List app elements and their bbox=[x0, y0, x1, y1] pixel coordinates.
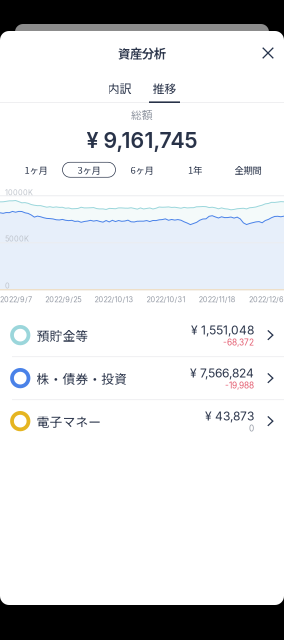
staticText: 電子マネー bbox=[36, 412, 101, 430]
staticText: 2022/9/25 bbox=[45, 295, 81, 304]
staticText: 10000K bbox=[5, 188, 33, 197]
button[interactable]: 預貯金等 bbox=[0, 314, 284, 357]
staticText: 3ヶ月 bbox=[77, 163, 100, 176]
staticText: 5000K bbox=[5, 234, 29, 243]
button[interactable]: 推移 bbox=[149, 75, 180, 103]
staticText: ¥ 1,551,048 bbox=[191, 323, 254, 337]
staticText: 1ヶ月 bbox=[24, 163, 47, 176]
staticText: 6ヶ月 bbox=[130, 163, 153, 176]
button[interactable]: 株・債券・投資 bbox=[0, 357, 284, 400]
staticText: 総額 bbox=[131, 107, 153, 122]
staticText: 1年 bbox=[188, 163, 202, 176]
staticText: 内訳 bbox=[107, 79, 131, 97]
staticText: 2022/11/18 bbox=[199, 295, 236, 304]
staticText: 2022/9/7 bbox=[0, 295, 32, 304]
staticText: 資産分析 bbox=[118, 44, 166, 62]
staticText: 株・債券・投資 bbox=[36, 369, 127, 387]
staticText: 2022/10/13 bbox=[94, 295, 133, 304]
staticText: -19,988 bbox=[225, 380, 254, 390]
button[interactable]: 6ヶ月 bbox=[115, 162, 168, 177]
button[interactable]: Close bbox=[252, 39, 284, 67]
staticText: 預貯金等 bbox=[36, 326, 88, 344]
staticText: 0 bbox=[249, 423, 254, 433]
staticText: 2022/10/31 bbox=[147, 295, 186, 304]
staticText: ¥ 43,873 bbox=[205, 409, 254, 423]
staticText: 2022/12/6 bbox=[249, 295, 284, 304]
staticText: ¥ 9,161,745 bbox=[86, 127, 197, 153]
button[interactable]: 内訳 bbox=[104, 75, 135, 103]
staticText: 全期間 bbox=[234, 163, 261, 176]
button[interactable]: 1年 bbox=[168, 162, 221, 177]
button[interactable]: 1ヶ月 bbox=[9, 162, 62, 177]
staticText: 0 bbox=[5, 281, 10, 290]
staticText: ¥ 7,566,824 bbox=[190, 366, 254, 380]
button[interactable]: 全期間 bbox=[221, 162, 274, 177]
button[interactable]: 3ヶ月 bbox=[62, 162, 115, 177]
staticText: -68,372 bbox=[223, 337, 254, 347]
button[interactable]: 電子マネー bbox=[0, 400, 284, 442]
staticText: 推移 bbox=[152, 79, 176, 97]
